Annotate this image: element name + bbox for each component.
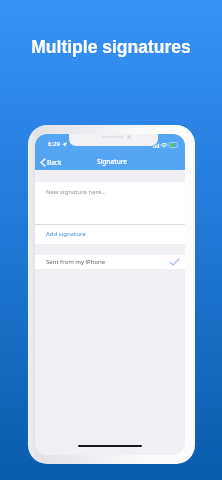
staticText: Signature: [97, 157, 128, 166]
staticText: Add signature: [46, 230, 86, 238]
staticText: Back: [47, 158, 62, 167]
button[interactable]: Sent from my iPhone: [35, 255, 185, 269]
staticText: Multiple signatures: [0, 37, 222, 57]
staticText: New signature here...: [46, 188, 107, 196]
staticText: Sent from my iPhone: [46, 258, 106, 266]
button[interactable]: Back: [35, 155, 68, 170]
staticText: 6:29: [48, 140, 60, 148]
button[interactable]: New signature here...: [35, 182, 185, 224]
button[interactable]: Add signature: [35, 224, 185, 244]
